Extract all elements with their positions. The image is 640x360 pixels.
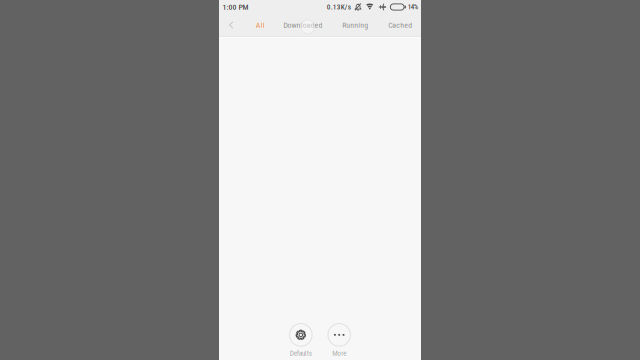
button[interactable]: Defaults — [282, 324, 320, 358]
button[interactable]: Cached — [380, 14, 420, 36]
button[interactable]: Back — [219, 14, 243, 36]
staticText: 1:00 PM — [222, 2, 248, 12]
button[interactable]: Running — [330, 14, 380, 36]
button[interactable]: Downloaded — [276, 14, 330, 36]
staticText: More — [332, 349, 346, 358]
staticText: Cached — [388, 20, 412, 30]
staticText: Downloaded — [283, 20, 322, 30]
staticText: 0.13K/s — [327, 3, 351, 11]
staticText: 14% — [408, 3, 418, 11]
button[interactable]: More — [320, 324, 358, 358]
staticText: Running — [342, 20, 368, 30]
button[interactable]: All — [245, 14, 276, 36]
staticText: All — [256, 20, 265, 30]
staticText: Defaults — [290, 349, 312, 358]
